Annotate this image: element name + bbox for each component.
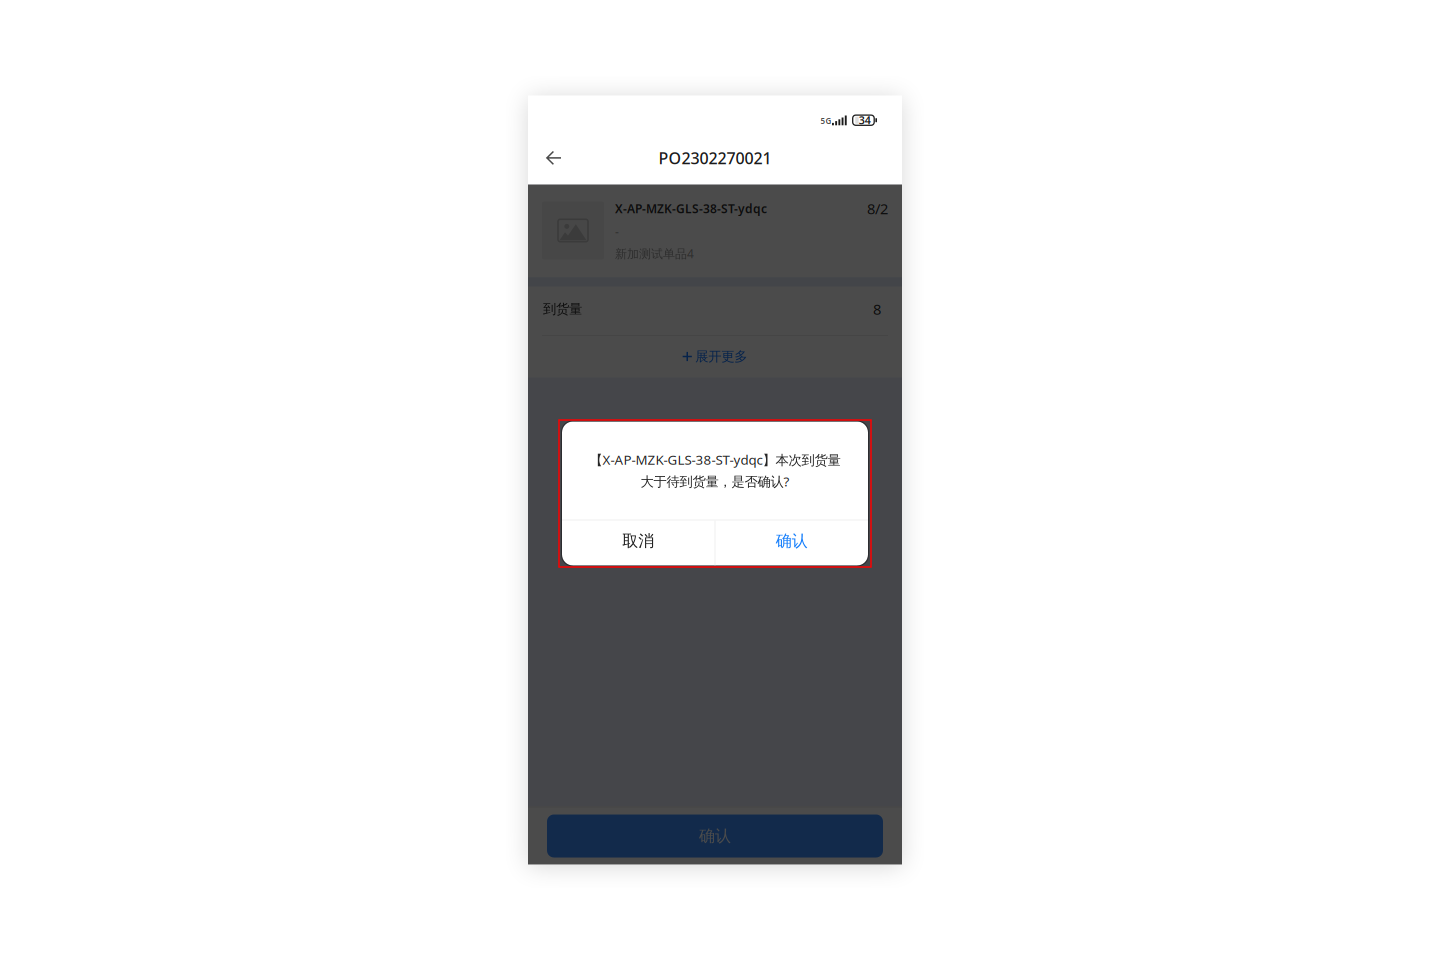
button[interactable]: Back — [536, 139, 572, 177]
staticText: 大于待到货量，是否确认? — [640, 472, 789, 490]
button[interactable]: 确认 — [715, 520, 868, 565]
staticText: X-AP-MZK-GLS-38-ST-ydqc — [615, 200, 767, 216]
staticText: PO2302270021 — [658, 147, 771, 169]
button[interactable]: 到货量 — [528, 287, 902, 335]
staticText: 8/2 — [867, 199, 888, 218]
staticText: 34 — [859, 113, 871, 127]
staticText: 5G — [820, 115, 831, 126]
staticText: 新加测试单品4 — [615, 245, 694, 261]
staticText: 【X-AP-MZK-GLS-38-ST-ydqc】本次到货量 — [589, 451, 840, 469]
staticText: 确认 — [776, 531, 808, 551]
staticText: 展开更多 — [695, 348, 747, 365]
staticText: - — [615, 223, 619, 239]
staticText: 到货量 — [543, 301, 582, 317]
staticText: 8 — [873, 299, 881, 319]
button[interactable]: 展开更多 — [528, 336, 902, 377]
button[interactable]: 取消 — [562, 520, 714, 565]
staticText: 取消 — [622, 531, 654, 551]
staticText: 确认 — [699, 826, 731, 846]
button[interactable]: X-AP-MZK-GLS-38-ST-ydqc — [528, 184, 902, 277]
button[interactable]: 确认 — [547, 814, 883, 857]
